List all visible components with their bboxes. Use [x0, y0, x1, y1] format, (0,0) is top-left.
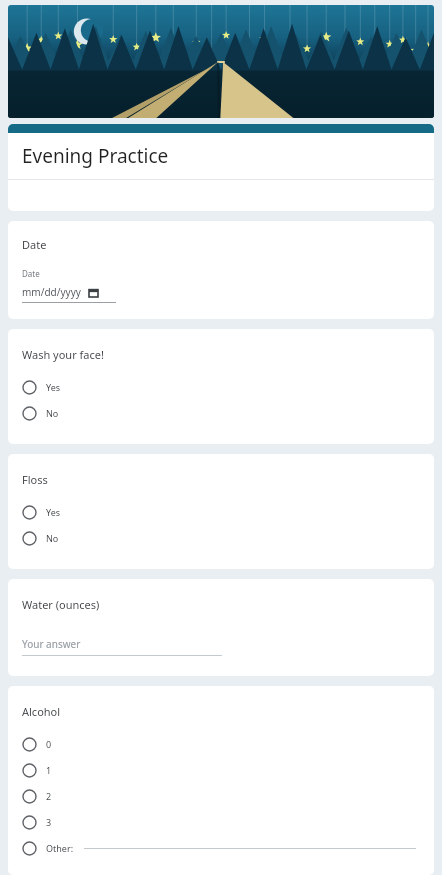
- staticText: Date: [22, 237, 47, 252]
- staticText: Wash your face!: [22, 347, 104, 362]
- staticText: Water (ounces): [22, 597, 100, 612]
- staticText: mm/dd/yyyy: [22, 285, 81, 299]
- staticText: No: [46, 532, 59, 544]
- staticText: Yes: [46, 506, 61, 518]
- button[interactable]: Choose date: [22, 285, 116, 303]
- staticText: 1: [46, 764, 52, 776]
- button[interactable]: No: [8, 525, 434, 551]
- staticText: Floss: [22, 472, 48, 487]
- button[interactable]: 2: [8, 783, 434, 809]
- button[interactable]: 1: [8, 757, 434, 783]
- staticText: Evening Practice: [22, 143, 169, 169]
- button[interactable]: 0: [8, 731, 434, 757]
- staticText: Yes: [46, 381, 61, 393]
- staticText: No: [46, 407, 59, 419]
- staticText: 0: [46, 738, 52, 750]
- staticText: 2: [46, 790, 52, 802]
- button[interactable]: Yes: [8, 499, 434, 525]
- staticText: Your answer: [22, 637, 81, 651]
- staticText: Alcohol: [22, 704, 61, 719]
- staticText: 3: [46, 816, 52, 828]
- button[interactable]: Yes: [8, 374, 434, 400]
- staticText: Date: [22, 268, 40, 279]
- staticText: Other:: [46, 842, 74, 854]
- button[interactable]: No: [8, 400, 434, 426]
- button[interactable]: Your answer: [22, 637, 222, 656]
- button[interactable]: 3: [8, 809, 434, 835]
- button[interactable]: Other:: [8, 835, 434, 861]
